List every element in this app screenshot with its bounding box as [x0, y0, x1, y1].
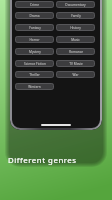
button[interactable]: Horror [15, 36, 54, 43]
staticText: Drama [29, 14, 40, 18]
staticText: Thriller [29, 73, 40, 77]
button[interactable]: Fantasy [15, 24, 54, 31]
button[interactable]: History [56, 24, 95, 31]
staticText: Family [71, 14, 81, 18]
button[interactable]: Romance [56, 48, 95, 55]
staticText: Western [28, 85, 41, 89]
staticText: Different genres [8, 155, 77, 166]
staticText: Science Fiction [24, 62, 46, 66]
staticText: Horror [29, 38, 40, 42]
button[interactable]: Family [56, 12, 95, 19]
button[interactable]: Western [15, 83, 54, 90]
staticText: Fantasy [29, 26, 41, 30]
staticText: Mystery [29, 50, 41, 54]
button[interactable]: Documentary [56, 1, 95, 8]
button[interactable]: Science Fiction [15, 60, 54, 67]
staticText: Music [71, 38, 80, 42]
staticText: History [70, 26, 81, 30]
button[interactable]: War [56, 71, 95, 78]
button[interactable]: Mystery [15, 48, 54, 55]
staticText: TV Movie [69, 62, 83, 66]
staticText: War [72, 73, 79, 77]
button[interactable]: Music [56, 36, 95, 43]
staticText: Crime [30, 3, 39, 7]
button[interactable]: Crime [15, 1, 54, 8]
staticText: Documentary [65, 3, 86, 7]
button[interactable]: Drama [15, 12, 54, 19]
staticText: Romance [69, 50, 83, 54]
button[interactable]: Thriller [15, 71, 54, 78]
button[interactable]: TV Movie [56, 60, 95, 67]
